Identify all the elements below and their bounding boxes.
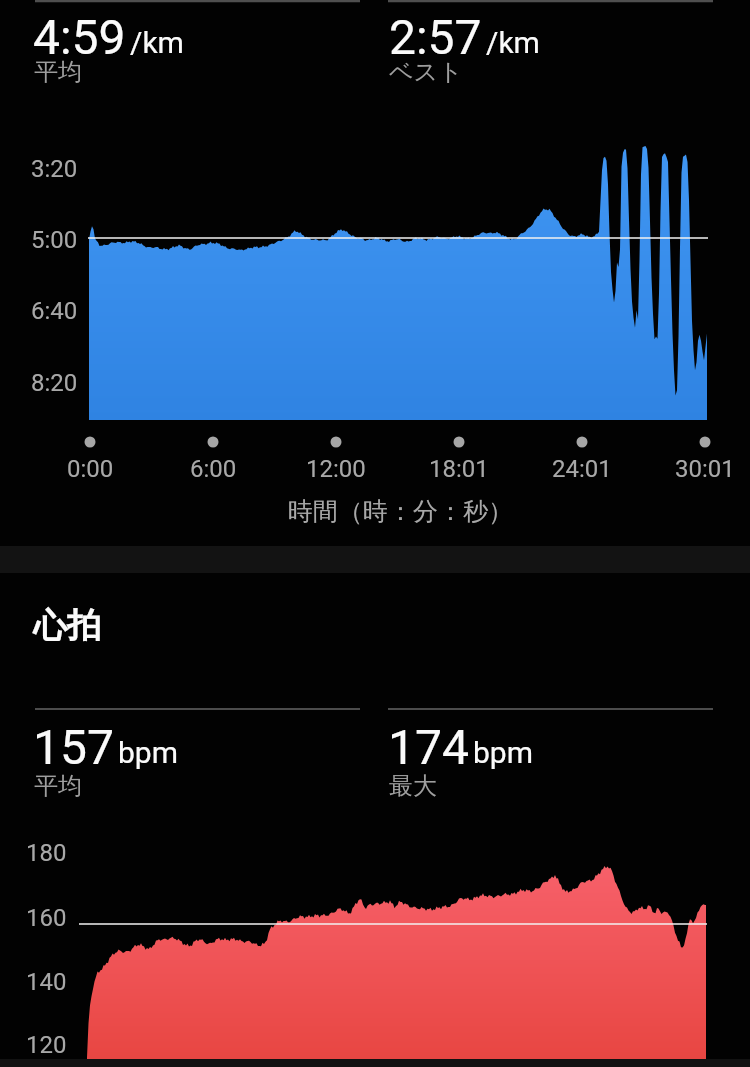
button[interactable]: 4:59 [33,9,184,65]
staticText: 18:01 [429,455,489,483]
button[interactable]: 157 [33,719,178,775]
staticText: 6:00 [190,455,237,483]
staticText: /km [486,25,540,60]
staticText: 174 [388,719,469,775]
staticText: 12:00 [306,455,366,483]
staticText: 157 [33,719,114,775]
staticText: 3:20 [31,155,78,183]
staticText: 平均 [34,57,82,87]
staticText: 180 [26,839,67,867]
staticText: 8:20 [31,369,78,397]
staticText: bpm [118,735,178,770]
staticText: 2:57 [389,9,482,65]
staticText: 6:40 [31,297,78,325]
staticText: 0:00 [67,455,114,483]
staticText: 5:00 [31,226,78,254]
staticText: 160 [26,904,67,932]
staticText: 時間（時：分：秒） [288,496,513,526]
staticText: 心拍 [33,604,101,647]
staticText: 120 [26,1031,67,1059]
staticText: 140 [26,968,67,996]
staticText: 最大 [389,771,437,801]
button[interactable]: 2:57 [389,9,540,65]
staticText: 4:59 [33,9,126,65]
staticText: 30:01 [675,455,735,483]
staticText: /km [130,25,184,60]
staticText: 平均 [34,771,82,801]
staticText: ベスト [389,57,463,87]
staticText: 24:01 [552,455,612,483]
button[interactable]: 174 [388,719,533,775]
staticText: bpm [473,735,533,770]
